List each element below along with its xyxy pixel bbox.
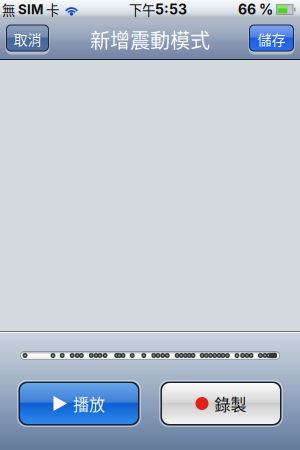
staticText: 新增震動模式 [90, 25, 210, 54]
staticText: 取消 [13, 29, 41, 49]
button[interactable]: 儲存 [248, 24, 295, 54]
button[interactable]: 錄製 [159, 380, 283, 427]
button[interactable]: 取消 [5, 24, 50, 54]
button[interactable]: 播放 [17, 380, 141, 427]
staticText: SIM [18, 1, 43, 17]
staticText: 無 [2, 0, 18, 19]
staticText: 錄製 [214, 392, 246, 415]
staticText: 卡 [43, 0, 59, 19]
staticText: 66 % [238, 1, 273, 18]
staticText: 播放 [73, 392, 105, 415]
staticText: 5:53 [155, 1, 187, 18]
staticText: 儲存 [257, 29, 285, 49]
staticText: 下午 [129, 0, 155, 19]
